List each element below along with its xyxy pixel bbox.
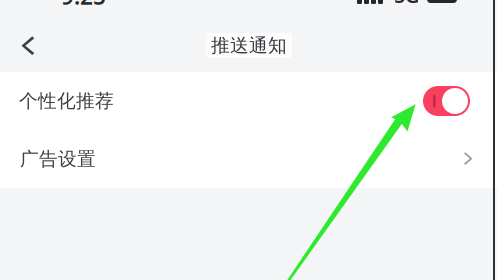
- staticText: 9:25: [61, 0, 106, 11]
- staticText: 广告设置: [20, 147, 96, 170]
- button[interactable]: Back: [0, 21, 56, 71]
- button[interactable]: 个性化推荐: [0, 72, 497, 130]
- staticText: 推送通知: [211, 34, 287, 57]
- staticText: 个性化推荐: [19, 89, 114, 112]
- staticText: 5G: [394, 0, 420, 9]
- button[interactable]: 广告设置: [0, 130, 497, 188]
